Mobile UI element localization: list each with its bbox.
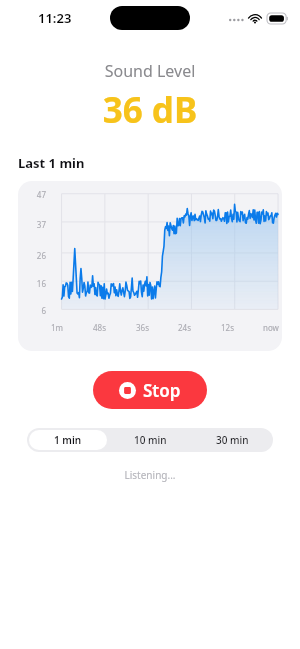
staticText: 16 [19,278,46,289]
staticText: 24s [178,322,191,333]
button[interactable]: 10 min [111,430,189,450]
staticText: 37 [19,219,46,230]
staticText: Stop [143,379,181,402]
staticText: 6 [19,305,46,316]
staticText: Sound Level [0,60,300,82]
staticText: 36s [136,322,149,333]
staticText: 10 min [134,433,167,447]
staticText: Listening... [0,468,300,482]
staticText: 47 [19,189,46,200]
staticText: now [263,322,279,333]
button[interactable]: Stop [93,371,207,409]
button[interactable]: 1 min [29,430,107,450]
staticText: 11:23 [38,9,72,27]
staticText: 12s [221,322,234,333]
staticText: 30 min [216,433,249,447]
staticText: 1 min [54,433,82,447]
staticText: 1m [51,322,64,333]
staticText: Last 1 min [18,154,85,172]
staticText: 36 dB [0,86,300,134]
staticText: 26 [19,250,46,261]
button[interactable]: 30 min [193,430,271,450]
staticText: 48s [93,322,106,333]
